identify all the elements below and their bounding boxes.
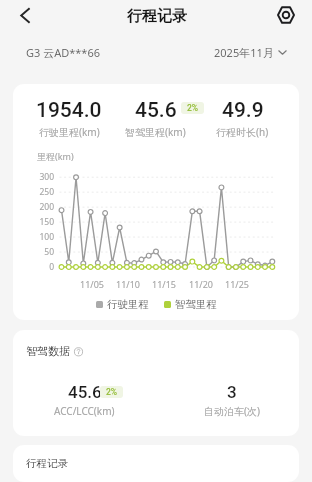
staticText: 150 — [27, 216, 54, 228]
staticText: 300 — [27, 171, 54, 183]
staticText: 2% — [187, 103, 199, 113]
staticText: G3 云AD***66 — [26, 45, 100, 60]
staticText: 3 — [227, 382, 237, 402]
staticText: 11/25 — [222, 278, 252, 290]
staticText: 里程(km) — [37, 150, 74, 162]
button[interactable]: 行程记录 — [13, 445, 299, 482]
staticText: ACC/LCC(km) — [54, 404, 115, 418]
staticText: 2% — [106, 387, 118, 397]
staticText: 11/10 — [113, 278, 143, 290]
staticText: 11/20 — [186, 278, 216, 290]
staticText: 0 — [27, 261, 54, 273]
staticText: 11/05 — [77, 278, 107, 290]
staticText: 2025年11月 — [214, 45, 274, 60]
staticText: 50 — [27, 246, 54, 258]
staticText: 自动泊车(次) — [204, 404, 260, 418]
staticText: 250 — [27, 186, 54, 198]
staticText: 行程记录 — [127, 7, 187, 26]
button[interactable]: Back — [0, 0, 46, 31]
other: Info — [74, 347, 83, 356]
staticText: 49.9 — [222, 98, 264, 123]
staticText: 智驾里程 — [175, 298, 217, 311]
staticText: 45.6 — [135, 98, 177, 123]
staticText: 行程记录 — [26, 457, 68, 470]
staticText: 200 — [27, 201, 54, 213]
staticText: 行程时长(h) — [216, 125, 269, 139]
staticText: 智驾里程(km) — [125, 125, 186, 139]
button[interactable]: 2025年11月 — [214, 45, 287, 60]
button[interactable]: Settings — [268, 0, 312, 31]
staticText: 45.6 — [68, 382, 102, 402]
staticText: 11/15 — [149, 278, 179, 290]
staticText: 行驶里程 — [107, 298, 149, 311]
staticText: 1954.0 — [36, 98, 102, 123]
staticText: 智驾数据 — [26, 344, 70, 358]
staticText: 行驶里程(km) — [39, 125, 100, 139]
staticText: 100 — [27, 231, 54, 243]
button[interactable]: 智驾数据 — [26, 344, 83, 358]
